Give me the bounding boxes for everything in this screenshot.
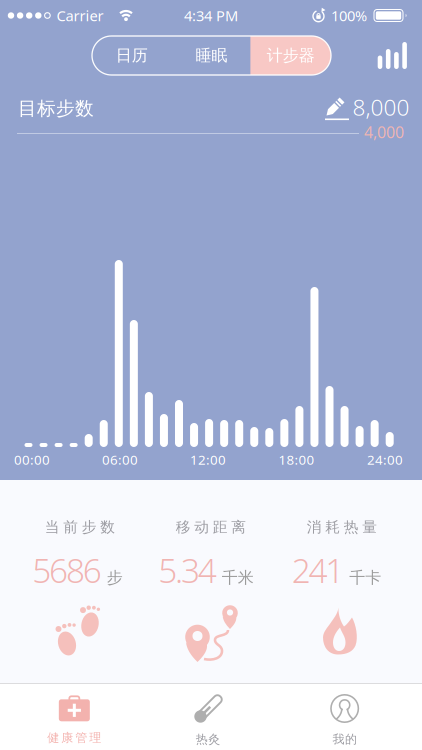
button[interactable]: 日历 (92, 36, 171, 75)
staticText: 18:00 (278, 451, 314, 468)
staticText: 4,000 (364, 121, 404, 143)
staticText: 4:34 PM (184, 6, 238, 25)
button[interactable]: 计步器 (251, 36, 330, 75)
staticText: 睡眠 (195, 46, 227, 65)
staticText: 00:00 (14, 451, 50, 468)
staticText: 计步器 (267, 46, 315, 65)
staticText: 241 (292, 548, 344, 592)
staticText: 8,000 (352, 92, 409, 122)
staticText: 12:00 (190, 451, 226, 468)
staticText: 24:00 (367, 451, 403, 468)
button[interactable]: 健康管理 (0, 695, 141, 745)
button[interactable]: Edit goal (312, 87, 422, 127)
staticText: 06:00 (102, 451, 138, 468)
staticText: 健康管理 (47, 730, 101, 745)
staticText: 我的 (332, 732, 357, 747)
staticText: 当前步数 (45, 518, 115, 536)
button[interactable]: 睡眠 (172, 36, 251, 75)
button[interactable]: 热灸 (141, 694, 281, 747)
staticText: 目标步数 (18, 97, 94, 120)
staticText: 5.34 (158, 548, 217, 592)
staticText: 5686 (32, 548, 102, 592)
staticText: 100% (331, 6, 367, 25)
staticText: 步 (107, 568, 123, 587)
staticText: 移动距离 (176, 518, 246, 536)
staticText: 热灸 (196, 732, 220, 747)
staticText: Carrier (56, 6, 103, 25)
button[interactable]: 我的 (281, 694, 422, 747)
staticText: 千米 (222, 568, 254, 587)
button[interactable]: Statistics (0, 0, 422, 480)
staticText: 千卡 (349, 568, 381, 587)
staticText: 日历 (116, 46, 148, 65)
staticText: 消耗热量 (307, 518, 377, 536)
